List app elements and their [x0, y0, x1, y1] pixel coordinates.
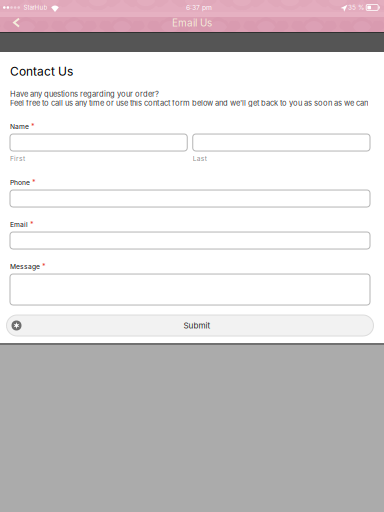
staticText: Feel free to call us any time or use thi…: [10, 98, 368, 108]
staticText: Email Us: [172, 17, 212, 29]
staticText: *: [31, 122, 35, 131]
staticText: 6:37 pm: [186, 3, 212, 12]
staticText: First: [10, 154, 25, 163]
staticText: Submit: [183, 321, 210, 330]
staticText: Name: [10, 122, 29, 131]
staticText: Have any questions regarding your order?: [10, 89, 159, 99]
staticText: Message: [10, 262, 40, 271]
staticText: *: [30, 220, 34, 229]
staticText: Contact Us: [10, 64, 73, 79]
staticText: StarHub: [23, 4, 47, 11]
staticText: *: [32, 178, 36, 187]
staticText: Last: [193, 154, 207, 163]
button[interactable]: Submit: [6, 315, 373, 336]
staticText: 35 %: [348, 4, 364, 11]
button[interactable]: Back: [0, 17, 34, 30]
staticText: Phone: [10, 178, 30, 187]
staticText: Email: [10, 220, 28, 229]
staticText: *: [42, 262, 46, 271]
